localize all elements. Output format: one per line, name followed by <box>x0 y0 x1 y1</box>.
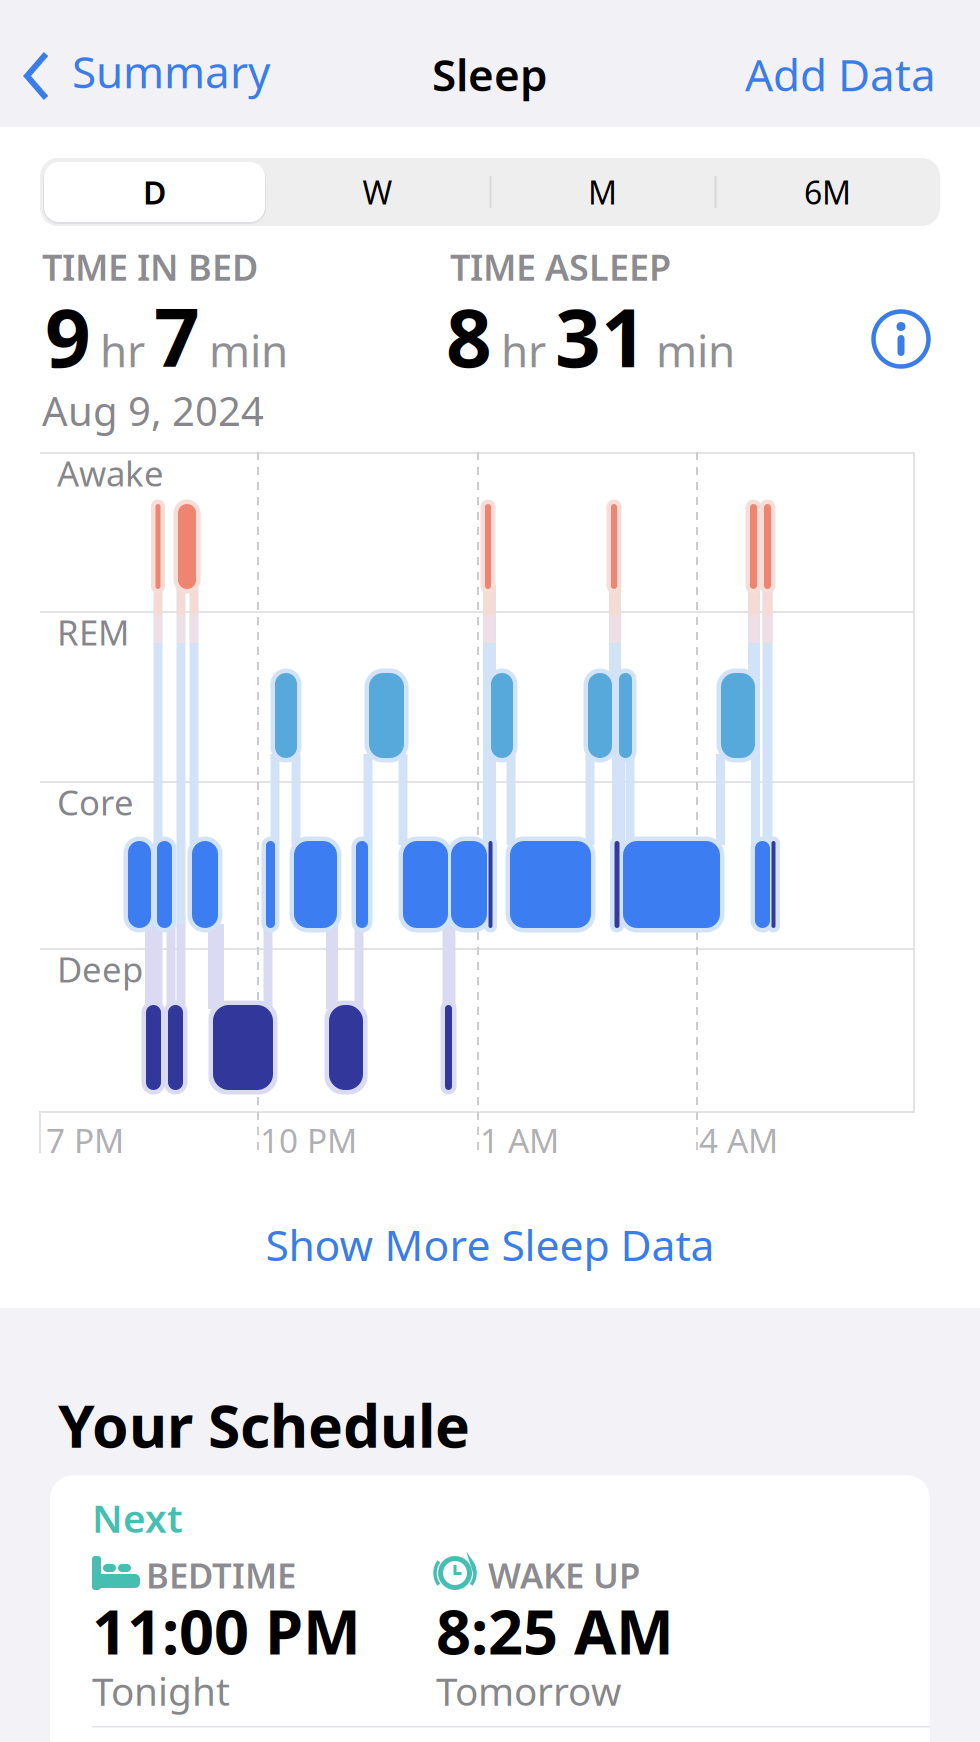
staticText: min <box>209 321 288 379</box>
staticText: Next <box>92 1492 183 1543</box>
staticText: BEDTIME <box>146 1552 296 1598</box>
staticText: 31 <box>555 283 647 389</box>
staticText: D <box>143 171 166 213</box>
staticText: Add Data <box>745 45 936 103</box>
staticText: TIME ASLEEP <box>450 243 671 291</box>
button[interactable]: W <box>265 160 490 224</box>
staticText: Core <box>57 779 134 825</box>
button[interactable]: Show More Sleep Data <box>265 1216 714 1273</box>
staticText: Summary <box>72 42 270 100</box>
staticText: Tomorrow <box>436 1665 621 1716</box>
staticText: Awake <box>57 450 164 496</box>
staticText: Deep <box>57 946 143 992</box>
staticText: TIME IN BED <box>42 243 258 291</box>
button[interactable]: Back to Summary <box>72 42 270 100</box>
staticText: 7 <box>154 283 200 389</box>
staticText: Your Schedule <box>58 1386 470 1464</box>
staticText: 4 AM <box>699 1118 778 1162</box>
staticText: min <box>656 321 735 379</box>
staticText: 10 PM <box>260 1118 357 1162</box>
button[interactable]: D <box>44 162 265 222</box>
staticText: WAKE UP <box>488 1552 640 1598</box>
staticText: Show More Sleep Data <box>265 1216 714 1273</box>
staticText: 1 AM <box>480 1118 559 1162</box>
button[interactable]: M <box>490 160 715 224</box>
staticText: hr <box>501 321 546 379</box>
staticText: 11:00 PM <box>92 1590 361 1671</box>
staticText: 6M <box>804 171 851 213</box>
staticText: 7 PM <box>46 1118 124 1162</box>
staticText: REM <box>57 609 129 655</box>
staticText: W <box>362 171 392 213</box>
staticText: hr <box>100 321 145 379</box>
staticText: M <box>588 171 617 213</box>
button[interactable]: About Sleep <box>871 309 931 369</box>
staticText: 9 <box>45 283 91 389</box>
staticText: 8 <box>446 283 492 389</box>
button[interactable]: Next <box>50 1475 930 1742</box>
staticText: Aug 9, 2024 <box>42 384 264 437</box>
staticText: Sleep <box>432 45 548 103</box>
staticText: Tonight <box>92 1665 230 1716</box>
button[interactable]: Add Data <box>745 45 936 103</box>
button[interactable]: 6M <box>715 160 940 224</box>
staticText: 8:25 AM <box>436 1590 674 1671</box>
